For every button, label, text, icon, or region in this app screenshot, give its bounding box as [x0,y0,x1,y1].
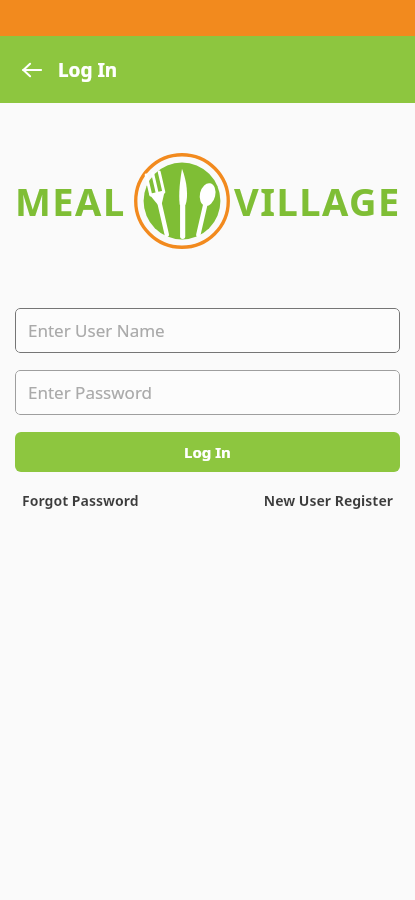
button[interactable]: Forgot Password [18,488,143,513]
button[interactable]: Enter Password [15,370,400,415]
staticText: VILLAGE [234,175,401,227]
button[interactable]: Log In [15,432,400,472]
staticText: Forgot Password [22,491,139,510]
button[interactable]: Back [12,50,52,90]
staticText: Log In [184,442,231,462]
staticText: Enter User Name [28,319,165,342]
button[interactable]: Enter User Name [15,308,400,353]
button[interactable]: New User Register [259,488,397,513]
staticText: Log In [58,57,118,83]
staticText: MEAL [15,175,126,227]
staticText: New User Register [263,491,393,510]
staticText: Enter Password [28,381,153,404]
